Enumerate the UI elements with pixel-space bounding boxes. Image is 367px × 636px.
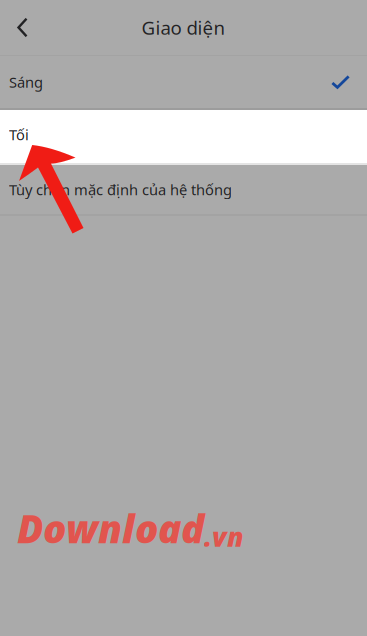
staticText: Giao diện bbox=[141, 15, 225, 40]
button[interactable]: Sáng bbox=[0, 56, 367, 108]
staticText: Tùy chọn mặc định của hệ thống bbox=[9, 180, 232, 199]
button[interactable]: Tùy chọn mặc định của hệ thống bbox=[0, 165, 367, 214]
staticText: Tối bbox=[9, 125, 29, 144]
staticText: Sáng bbox=[9, 72, 43, 92]
staticText: .vn bbox=[204, 519, 244, 554]
staticText: Download bbox=[17, 503, 204, 554]
button[interactable]: Tối bbox=[0, 110, 367, 163]
button[interactable]: Back bbox=[0, 3, 45, 51]
